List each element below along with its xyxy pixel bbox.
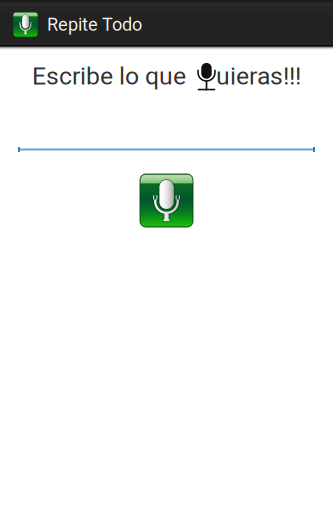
staticText: Escribe lo que — [32, 61, 192, 91]
button[interactable]: Hablar — [140, 174, 193, 227]
staticText: Repite Todo — [47, 14, 142, 35]
staticText: uieras!!! — [216, 61, 301, 91]
